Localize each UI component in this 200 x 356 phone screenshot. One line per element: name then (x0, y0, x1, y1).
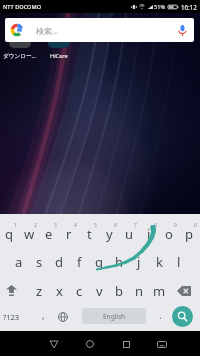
staticText: b (115, 282, 123, 300)
staticText: 5 (94, 222, 97, 229)
button[interactable]: c (69, 276, 89, 305)
button[interactable]: Home (79, 333, 101, 355)
button[interactable]: HiCare (48, 30, 70, 48)
button[interactable]: 検索... (5, 18, 194, 42)
staticText: 6 (114, 222, 117, 229)
staticText: n (135, 282, 144, 300)
button[interactable]: i (139, 218, 159, 247)
staticText: 51% (154, 3, 166, 11)
staticText: 9 (174, 222, 177, 229)
staticText: 7 (134, 222, 137, 229)
staticText: 3 (54, 222, 57, 229)
staticText: i (147, 225, 151, 243)
button[interactable]: Period (150, 302, 170, 331)
staticText: 4 (74, 222, 77, 229)
staticText: w (24, 225, 35, 243)
button[interactable]: g (89, 247, 109, 276)
button[interactable]: r (59, 218, 79, 247)
staticText: e (45, 225, 53, 243)
button[interactable]: Search (172, 306, 193, 327)
staticText: 16:12 (181, 3, 197, 11)
button[interactable]: a (9, 247, 29, 276)
staticText: NTT DOCOMO (3, 3, 42, 11)
staticText: English (103, 312, 126, 321)
button[interactable]: y (99, 218, 119, 247)
button[interactable]: Keyboard (151, 333, 173, 355)
button[interactable]: Downloads (9, 30, 31, 48)
staticText: 1 (14, 222, 17, 229)
button[interactable]: ?123 (1, 302, 21, 331)
button[interactable]: t (79, 218, 99, 247)
button[interactable]: p (179, 218, 199, 247)
button[interactable]: s (29, 247, 49, 276)
staticText: m (153, 282, 166, 300)
staticText: . (159, 308, 162, 322)
staticText: l (177, 253, 181, 271)
staticText: o (165, 225, 173, 243)
staticText: , (42, 308, 45, 322)
button[interactable]: d (49, 247, 69, 276)
button[interactable]: h (109, 247, 129, 276)
button[interactable]: l (169, 247, 189, 276)
staticText: j (137, 253, 141, 271)
staticText: d (55, 253, 63, 271)
staticText: ?123 (3, 312, 20, 322)
staticText: HiCare (50, 52, 68, 60)
button[interactable]: Language (53, 302, 73, 331)
staticText: f (77, 253, 82, 271)
staticText: s (36, 253, 43, 271)
button[interactable]: Comma (33, 302, 53, 331)
button[interactable]: w (19, 218, 39, 247)
button[interactable]: Shift (0, 276, 22, 305)
staticText: 検索... (36, 25, 59, 36)
button[interactable]: o (159, 218, 179, 247)
staticText: c (76, 282, 83, 300)
button[interactable]: n (129, 276, 149, 305)
staticText: 0 (194, 222, 197, 229)
staticText: x (56, 282, 63, 300)
staticText: t (87, 225, 92, 243)
button[interactable]: Back (43, 333, 65, 355)
staticText: g (95, 253, 103, 271)
button[interactable]: j (129, 247, 149, 276)
staticText: v (96, 282, 103, 300)
staticText: h (115, 253, 124, 271)
button[interactable]: q (0, 218, 19, 247)
button[interactable]: m (149, 276, 169, 305)
staticText: ダウンロー… (3, 52, 36, 60)
button[interactable]: k (149, 247, 169, 276)
button[interactable]: Backspace (172, 276, 196, 305)
staticText: a (15, 253, 23, 271)
button[interactable]: z (29, 276, 49, 305)
staticText: p (185, 225, 193, 243)
button[interactable]: v (89, 276, 109, 305)
button[interactable]: English (82, 308, 146, 324)
button[interactable]: u (119, 218, 139, 247)
staticText: u (125, 225, 134, 243)
staticText: y (106, 225, 113, 243)
staticText: z (36, 282, 43, 300)
staticText: k (156, 253, 163, 271)
button[interactable]: b (109, 276, 129, 305)
button[interactable]: f (69, 247, 89, 276)
staticText: 8 (154, 222, 157, 229)
staticText: 2 (34, 222, 37, 229)
staticText: r (66, 225, 72, 243)
staticText: q (5, 225, 13, 243)
button[interactable]: e (39, 218, 59, 247)
button[interactable]: x (49, 276, 69, 305)
button[interactable]: Recents (115, 333, 137, 355)
